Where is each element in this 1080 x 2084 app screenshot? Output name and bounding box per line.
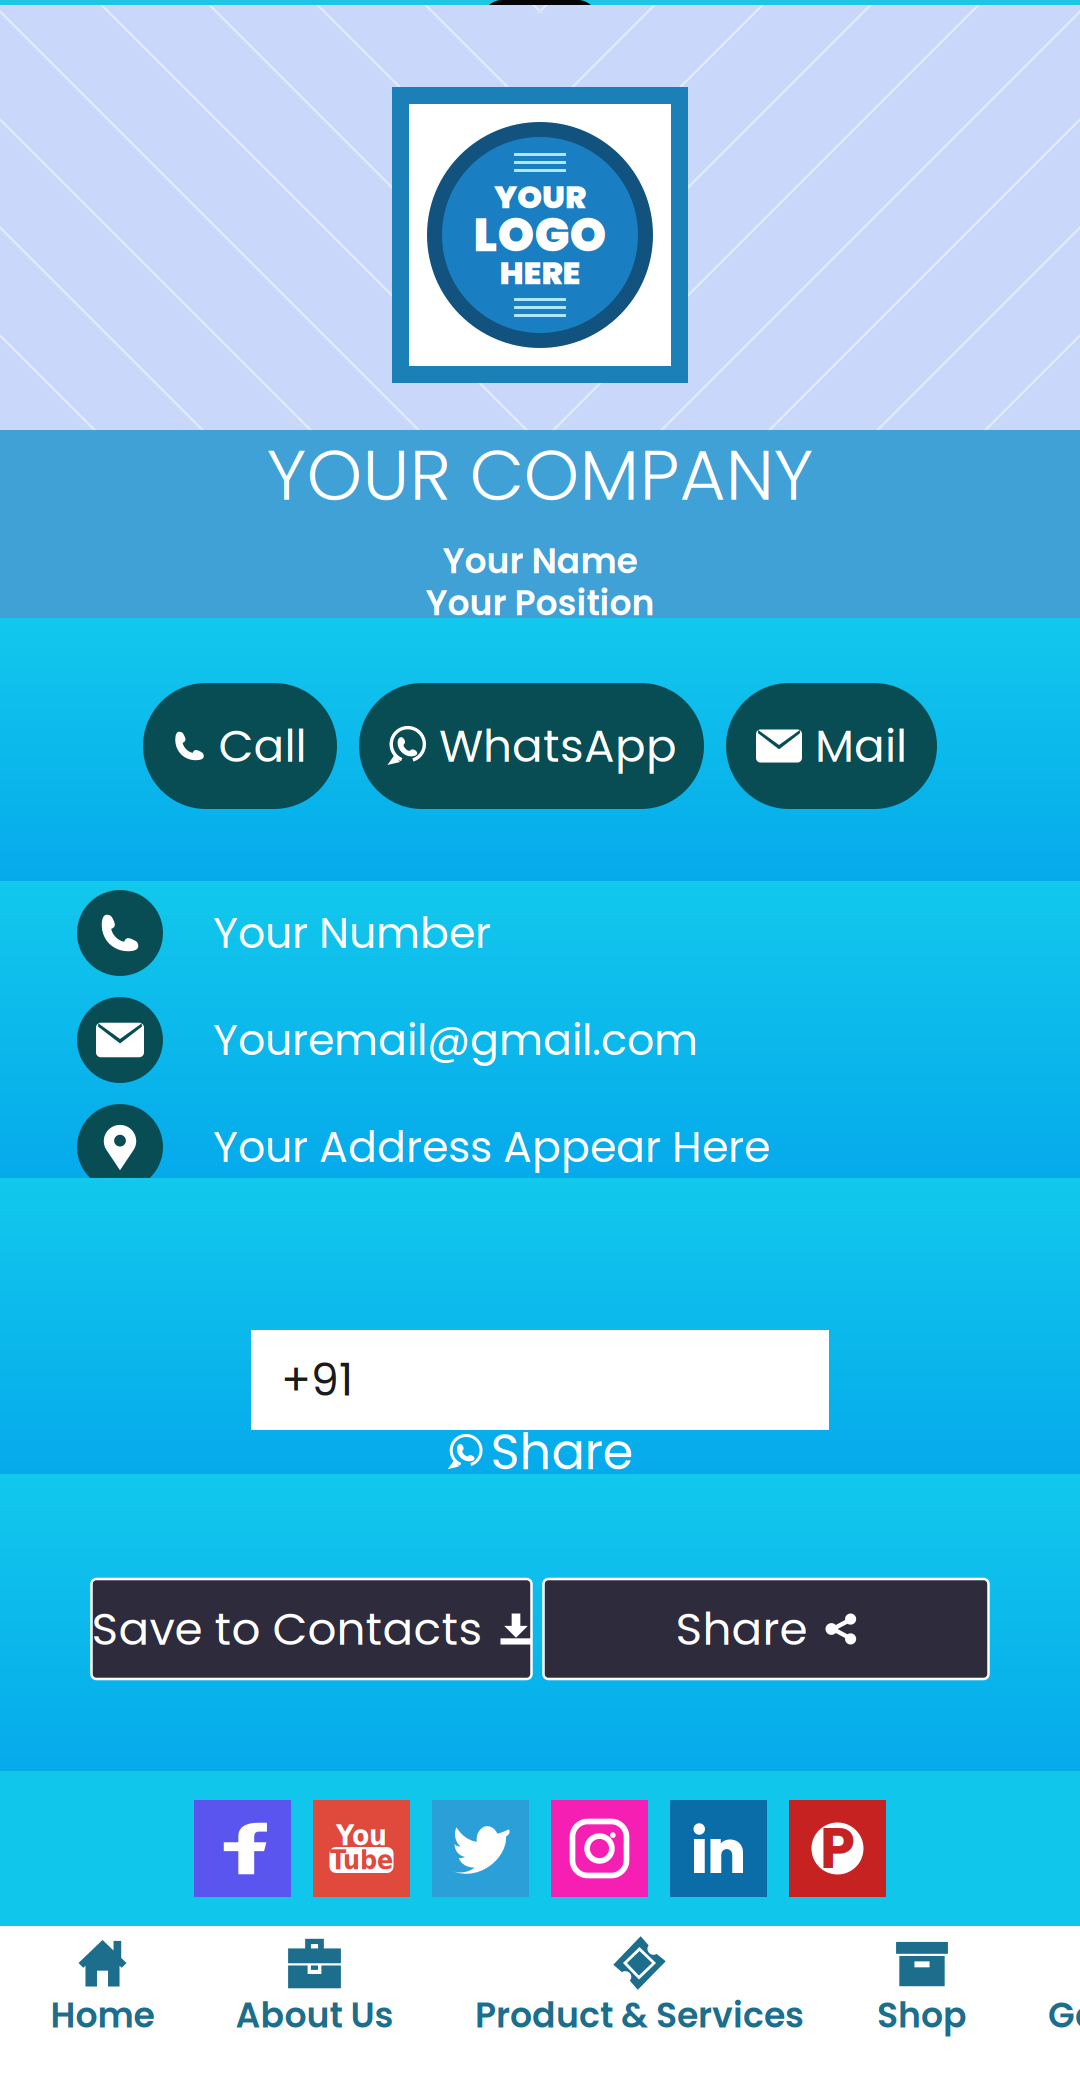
button[interactable]: Pinterest xyxy=(789,1800,886,1897)
button[interactable]: Share xyxy=(446,1430,633,1474)
button[interactable]: Share xyxy=(543,1579,988,1679)
staticText: Youremail@gmail.com xyxy=(213,1010,698,1070)
staticText: Share xyxy=(675,1597,807,1661)
staticText: Shop xyxy=(877,1991,967,2039)
staticText: Product & Services xyxy=(475,1991,804,2039)
staticText: Your Number xyxy=(213,903,491,963)
button[interactable]: Your Address Appear Here xyxy=(0,1104,1080,1190)
button[interactable]: WhatsApp xyxy=(359,683,704,809)
staticText: Gallery xyxy=(1048,1991,1080,2039)
staticText: YOUR COMPANY xyxy=(266,425,813,524)
staticText: YOUR xyxy=(494,175,586,219)
button[interactable]: Youremail@gmail.com xyxy=(0,997,1080,1083)
staticText: You xyxy=(336,1819,387,1852)
button[interactable]: Home xyxy=(0,1926,195,2084)
staticText: WhatsApp xyxy=(439,714,677,778)
button[interactable]: LinkedIn xyxy=(670,1800,767,1897)
staticText: +91 xyxy=(281,1349,353,1411)
button[interactable]: Twitter xyxy=(432,1800,529,1897)
button[interactable]: Shop xyxy=(0,1926,1007,2084)
button[interactable]: Product & Services xyxy=(0,1926,844,2084)
button[interactable]: Gallery xyxy=(0,1926,1080,2084)
staticText: Your Position xyxy=(425,579,654,627)
staticText: About Us xyxy=(235,1991,393,2039)
staticText: Your Address Appear Here xyxy=(213,1117,770,1177)
staticText: Save to Contacts xyxy=(91,1597,482,1661)
staticText: Tube xyxy=(330,1844,393,1875)
staticText: Share xyxy=(490,1417,633,1487)
button[interactable]: Instagram xyxy=(551,1800,648,1897)
button[interactable]: YouTube xyxy=(313,1800,410,1897)
staticText: Mail xyxy=(815,714,907,778)
staticText: Your Name xyxy=(442,537,637,585)
staticText: Call xyxy=(218,714,306,778)
staticText: P xyxy=(820,1809,855,1888)
button[interactable]: About Us xyxy=(0,1926,434,2084)
button[interactable]: Call xyxy=(143,683,337,809)
button[interactable]: Your Number xyxy=(0,890,1080,976)
button[interactable]: Facebook xyxy=(194,1800,291,1897)
button[interactable]: Save to Contacts xyxy=(91,1579,531,1679)
staticText: HERE xyxy=(499,251,580,295)
button[interactable]: Mail xyxy=(726,683,937,809)
staticText: Home xyxy=(50,1991,154,2039)
staticText: LOGO xyxy=(473,202,606,268)
